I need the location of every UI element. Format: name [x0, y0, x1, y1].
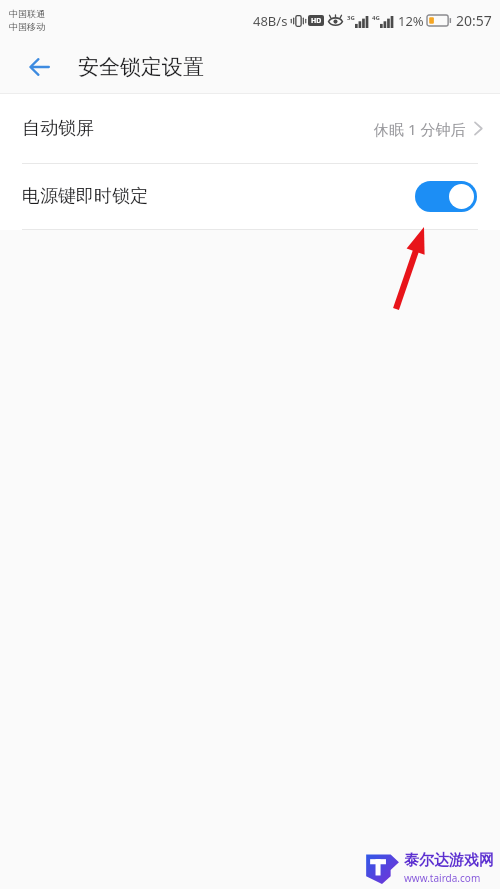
button[interactable]: 电源键即时锁定开关 [415, 181, 477, 212]
staticText: 休眠 1 分钟后 [374, 119, 466, 139]
staticText: 12% [398, 12, 424, 30]
staticText: 中国移动 [9, 21, 45, 32]
staticText: 20:57 [456, 11, 492, 30]
button[interactable]: 返回 [14, 41, 66, 93]
staticText: 48B/s [253, 12, 288, 30]
staticText: 4G [372, 14, 380, 22]
staticText: 安全锁定设置 [78, 54, 204, 80]
staticText: 3G [347, 14, 355, 22]
staticText: 中国联通 [9, 8, 45, 19]
staticText: www.tairda.com [404, 871, 481, 885]
button[interactable]: 自动锁屏 [0, 94, 500, 163]
staticText: 自动锁屏 [22, 117, 94, 140]
staticText: 泰尔达游戏网 [404, 851, 494, 870]
staticText: HD [311, 16, 322, 26]
button[interactable]: 电源键即时锁定 [0, 164, 500, 229]
staticText: 电源键即时锁定 [22, 185, 148, 208]
